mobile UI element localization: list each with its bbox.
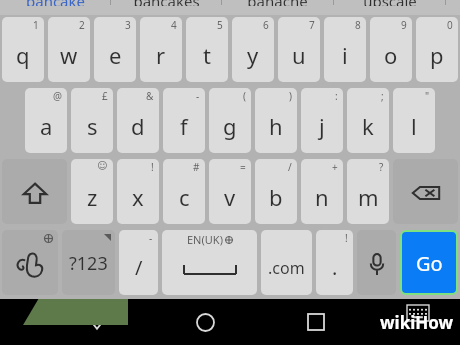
staticText: Go (416, 250, 443, 277)
button[interactable]: pancakes (111, 0, 221, 6)
staticText: h (269, 111, 283, 141)
staticText: z (87, 182, 98, 212)
staticText: pancake (26, 0, 85, 6)
button[interactable]: Go (400, 230, 458, 297)
staticText: ? (379, 160, 384, 174)
staticText: / (288, 160, 292, 174)
staticText: o (384, 40, 398, 70)
staticText: ☺ (97, 160, 108, 172)
button[interactable]: + (301, 159, 343, 226)
staticText: / (135, 254, 143, 281)
button[interactable]: - (119, 230, 158, 297)
button[interactable]: Backspace (393, 159, 458, 226)
button[interactable]: panache (222, 0, 333, 6)
staticText: k (362, 111, 374, 141)
staticText: g (223, 111, 237, 141)
button[interactable]: Switch keyboard (388, 299, 448, 345)
staticText: . (332, 254, 338, 281)
button[interactable]: @ (25, 88, 67, 155)
button[interactable]: 7 (278, 17, 320, 84)
staticText: & (146, 89, 154, 103)
staticText: x (132, 182, 144, 212)
staticText: 0 (447, 18, 453, 32)
button[interactable]: Shift (2, 159, 67, 226)
button[interactable]: ) (255, 88, 297, 155)
button[interactable]: 4 (140, 17, 182, 84)
button[interactable]: Voice input (357, 230, 396, 297)
staticText: d (131, 111, 145, 141)
staticText: f (180, 111, 188, 141)
button[interactable]: # (163, 159, 205, 226)
staticText: - (149, 231, 153, 245)
button[interactable]: Space (162, 230, 257, 297)
staticText: s (87, 111, 98, 141)
staticText: y (247, 40, 259, 70)
staticText: panache (247, 0, 308, 6)
staticText: ?123 (69, 251, 108, 276)
button[interactable]: pancake (0, 0, 110, 6)
button[interactable]: 3 (94, 17, 136, 84)
button[interactable]: & (117, 88, 159, 155)
button[interactable]: ; (347, 88, 389, 155)
staticText: p (430, 40, 444, 70)
button[interactable]: ☺ (71, 159, 113, 226)
button[interactable]: / (255, 159, 297, 226)
button[interactable]: 8 (324, 17, 366, 84)
staticText: 1 (33, 18, 39, 32)
staticText: w (60, 40, 78, 70)
button[interactable]: - (163, 88, 205, 155)
staticText: 9 (401, 18, 407, 32)
button[interactable]: 9 (370, 17, 412, 84)
button[interactable]: ! (117, 159, 159, 226)
staticText: n (315, 182, 329, 212)
staticText: i (342, 40, 348, 70)
button[interactable]: ?123 (62, 230, 115, 297)
staticText: c (179, 182, 190, 212)
button[interactable]: 5 (186, 17, 228, 84)
staticText: EN(UK) (187, 232, 223, 247)
staticText: 4 (171, 18, 177, 32)
staticText: = (240, 160, 246, 174)
staticText: q (16, 40, 30, 70)
button[interactable]: Home (175, 299, 235, 345)
button[interactable]: £ (71, 88, 113, 155)
button[interactable]: ! (316, 230, 353, 297)
button[interactable]: 0 (416, 17, 458, 84)
staticText: @ (53, 89, 62, 103)
staticText: : (335, 89, 338, 103)
staticText: 6 (263, 18, 269, 32)
staticText: m (358, 182, 379, 212)
button[interactable]: ( (209, 88, 251, 155)
staticText: 2 (79, 18, 85, 32)
button[interactable]: upscale (334, 0, 445, 6)
button[interactable]: .com (261, 230, 312, 297)
staticText: b (269, 182, 283, 212)
button[interactable]: ? (347, 159, 389, 226)
button[interactable]: Handwriting input (2, 230, 58, 297)
staticText: upscale (363, 0, 417, 6)
staticText: ; (381, 89, 384, 103)
button[interactable]: Recent apps (286, 299, 346, 345)
button[interactable]: " (393, 88, 435, 155)
button[interactable]: : (301, 88, 343, 155)
button[interactable]: 2 (48, 17, 90, 84)
staticText: a (40, 111, 53, 141)
button[interactable]: 6 (232, 17, 274, 84)
button[interactable]: = (209, 159, 251, 226)
staticText: ! (345, 231, 348, 245)
staticText: 7 (309, 18, 315, 32)
staticText: 5 (217, 18, 223, 32)
staticText: j (319, 111, 325, 141)
staticText: " (425, 89, 430, 103)
staticText: ) (289, 89, 292, 103)
staticText: £ (102, 89, 108, 103)
staticText: u (292, 40, 306, 70)
button[interactable]: 1 (2, 17, 44, 84)
staticText: 3 (125, 18, 131, 32)
staticText: e (109, 40, 122, 70)
staticText: r (156, 40, 166, 70)
staticText: l (411, 111, 417, 141)
button[interactable]: Back (67, 299, 127, 345)
staticText: ( (243, 89, 246, 103)
